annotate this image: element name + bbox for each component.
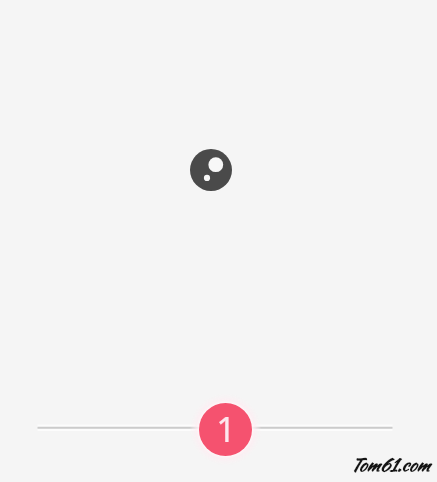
button[interactable]: Marker [190,149,232,191]
staticText: Tom61.com [350,452,430,477]
staticText: 1 [216,406,236,452]
button[interactable]: 1 [199,403,252,456]
